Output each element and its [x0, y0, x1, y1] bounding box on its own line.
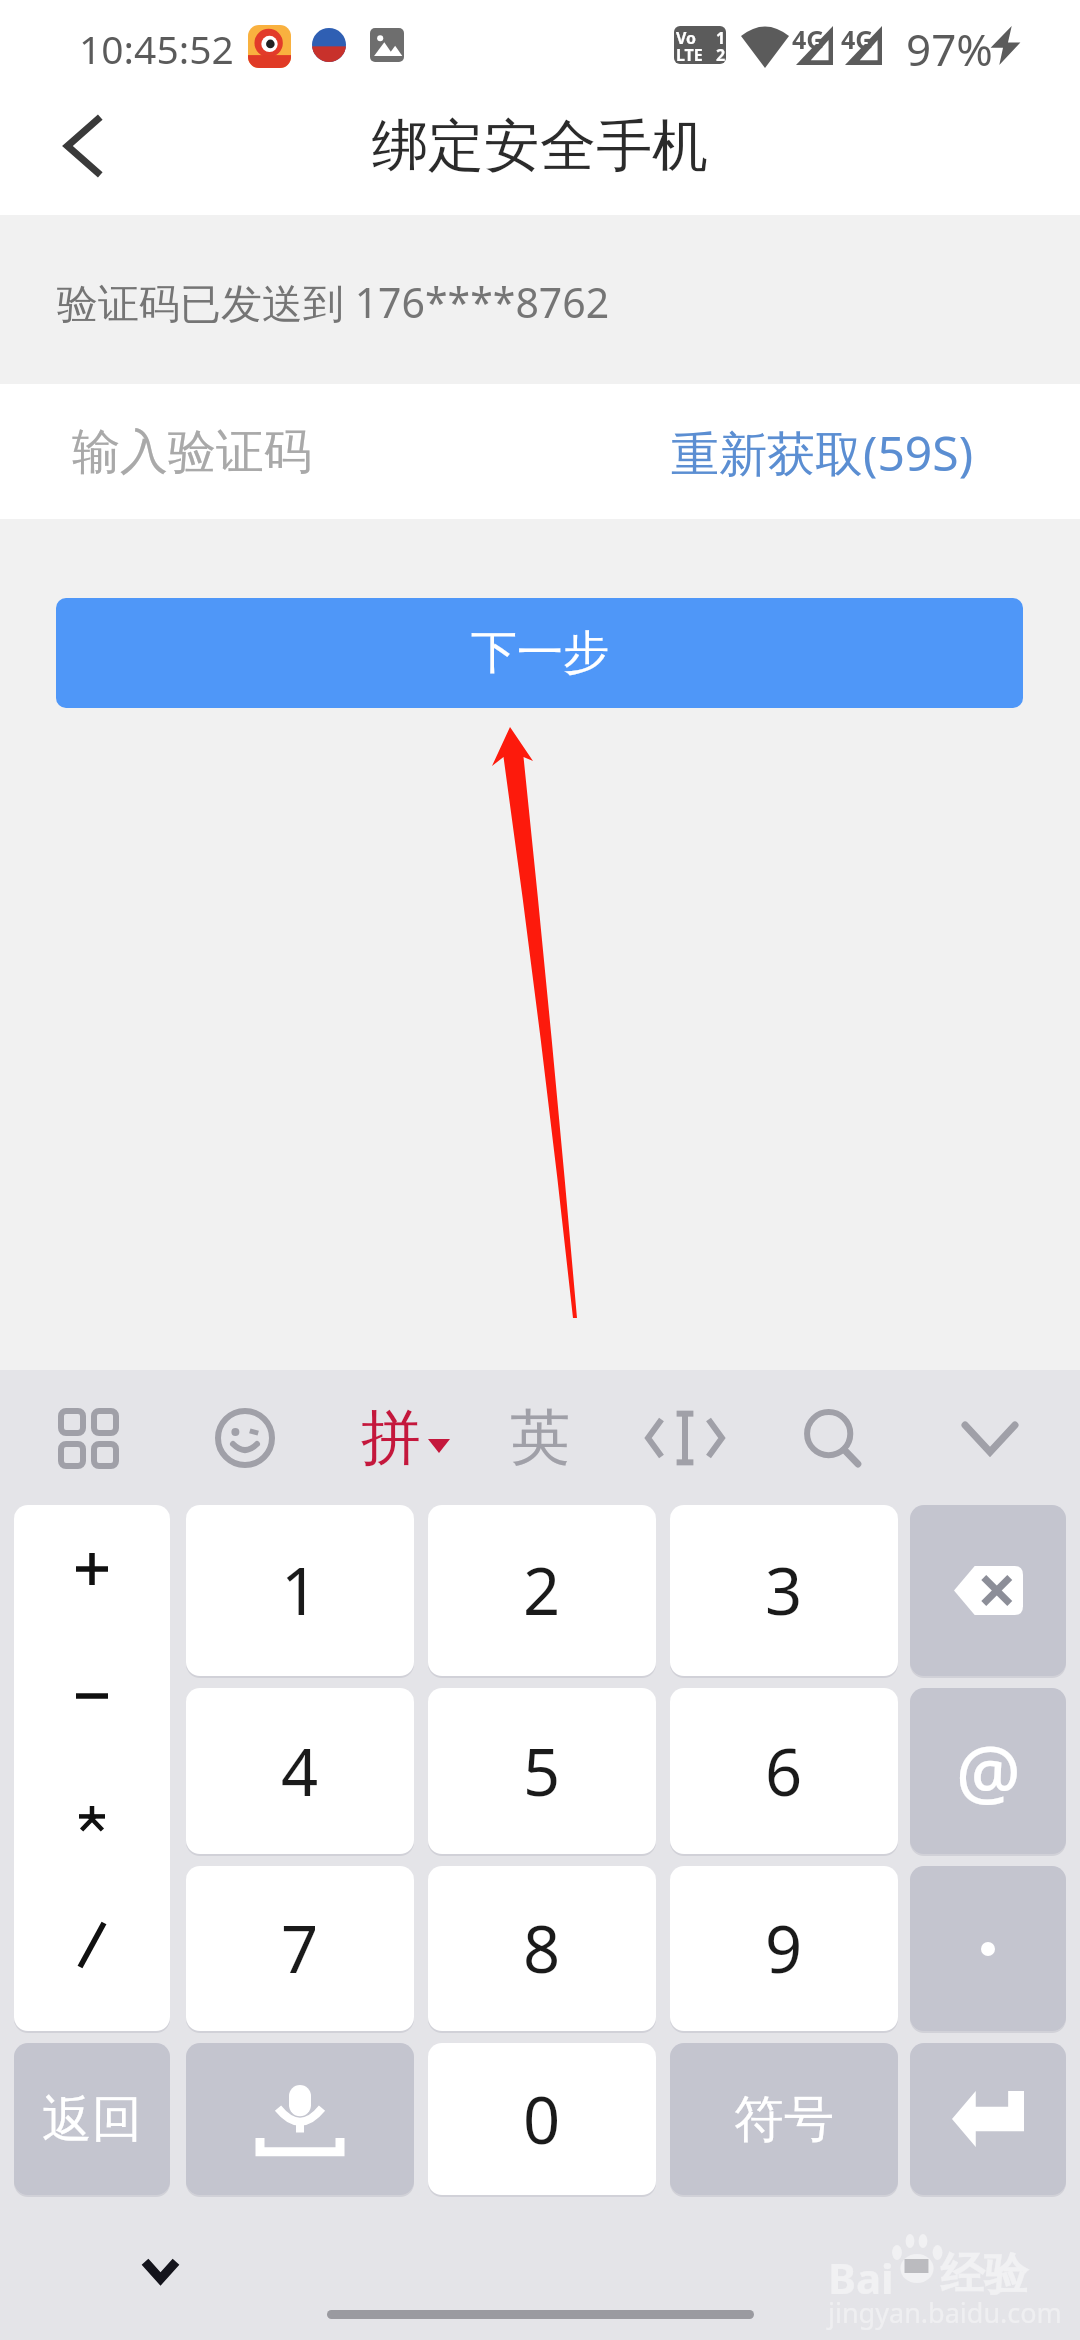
staticText: 英 [510, 1400, 570, 1476]
button[interactable]: Back [27, 91, 137, 201]
button[interactable]: Hide keyboard [120, 2242, 200, 2302]
staticText: 5 [523, 1727, 561, 1816]
staticText: 6 [765, 1727, 803, 1816]
staticText: 97% [906, 19, 993, 79]
staticText: 验证码已发送到 176****8762 [57, 274, 610, 330]
button[interactable]: 0 [428, 2043, 656, 2195]
staticText: 重新获取(59S) [671, 420, 974, 486]
staticText: 3 [765, 1546, 803, 1635]
button[interactable]: 下一步 [56, 598, 1023, 708]
staticText: 9 [765, 1904, 803, 1993]
button[interactable]: 9 [670, 1866, 898, 2031]
button[interactable]: 1 [186, 1505, 414, 1676]
button[interactable]: Symbols [14, 1505, 170, 2031]
staticText: 2 [523, 1546, 561, 1635]
staticText: 1 [716, 27, 726, 49]
staticText: 拼 [361, 1400, 421, 1476]
button[interactable]: 返回 [14, 2043, 170, 2195]
button[interactable]: Period [910, 1866, 1066, 2031]
staticText: 输入验证码 [72, 422, 312, 482]
staticText: Bai [828, 2249, 894, 2306]
button[interactable]: Keyboard layouts [33, 1383, 143, 1493]
staticText: 绑定安全手机 [372, 111, 708, 182]
staticText: 4G [792, 22, 825, 56]
staticText: 4G [841, 22, 874, 56]
staticText: Vo [676, 27, 697, 49]
button[interactable]: 英 [485, 1383, 595, 1493]
button[interactable]: 5 [428, 1688, 656, 1854]
button[interactable]: 4 [186, 1688, 414, 1854]
button[interactable]: Enter [910, 2043, 1066, 2195]
staticText: 符号 [734, 2088, 834, 2151]
staticText: 返回 [42, 2088, 142, 2151]
staticText: 1 [281, 1546, 319, 1635]
staticText: 0 [523, 2075, 561, 2164]
button[interactable]: @ [910, 1688, 1066, 1854]
button[interactable]: 2 [428, 1505, 656, 1676]
staticText: LTE [676, 44, 703, 64]
button[interactable]: 7 [186, 1866, 414, 2031]
staticText: 2 [716, 44, 726, 64]
button[interactable]: 符号 [670, 2043, 898, 2195]
staticText: 8 [523, 1904, 561, 1993]
button[interactable]: 8 [428, 1866, 656, 2031]
button[interactable]: 拼 [340, 1383, 470, 1493]
button[interactable]: Collapse keyboard [935, 1383, 1045, 1493]
staticText: 7 [281, 1904, 319, 1993]
button[interactable]: 3 [670, 1505, 898, 1676]
button[interactable]: Move cursor [630, 1383, 740, 1493]
button[interactable]: Microphone [186, 2043, 414, 2195]
staticText: 经验 [940, 2247, 1028, 2302]
staticText: 10:45:52 [79, 22, 234, 75]
staticText: 4 [281, 1727, 319, 1816]
button[interactable]: Search [778, 1383, 888, 1493]
button[interactable]: 6 [670, 1688, 898, 1854]
staticText: 下一步 [471, 624, 609, 682]
button[interactable]: Emoji [190, 1383, 300, 1493]
staticText: jingyan.baidu.com [828, 2294, 1062, 2331]
staticText: @ [956, 1722, 1021, 1820]
button[interactable]: Backspace [910, 1505, 1066, 1676]
button[interactable]: 重新获取(59S) [660, 400, 985, 505]
